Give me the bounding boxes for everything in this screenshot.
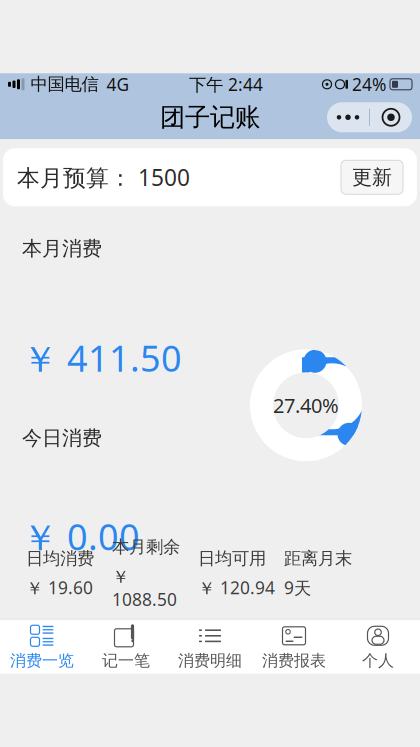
staticText: 下午 2:44 [189, 73, 263, 96]
staticText: 本月预算： 1500 [17, 162, 190, 192]
staticText: ￥ 1088.50 [112, 565, 177, 611]
staticText: 日均可用 [198, 548, 266, 569]
staticText: 27.40% [273, 392, 339, 419]
staticText: 更新 [352, 165, 392, 190]
button[interactable]: More [327, 102, 369, 132]
button[interactable]: 消费报表 [252, 619, 336, 674]
staticText: 团子记账 [160, 102, 260, 133]
button[interactable]: 消费一览 [0, 619, 84, 674]
staticText: ￥ 411.50 [22, 334, 182, 382]
staticText: 24% [352, 73, 386, 96]
staticText: 消费一览 [10, 651, 74, 670]
staticText: 记一笔 [102, 651, 150, 670]
staticText: 9天 [284, 576, 311, 599]
staticText: 本月消费 [22, 236, 102, 261]
staticText: 个人 [362, 651, 394, 670]
staticText: ￥ 120.94 [198, 576, 275, 599]
button[interactable]: 记一笔 [84, 619, 168, 674]
staticText: 中国电信 [30, 74, 98, 95]
staticText: 日均消费 [26, 548, 94, 569]
staticText: 消费明细 [178, 651, 242, 670]
button[interactable]: 消费明细 [168, 619, 252, 674]
staticText: 本月剩余 [112, 536, 180, 558]
staticText: ￥ 0.00 [22, 512, 140, 560]
button[interactable]: 更新 [341, 160, 403, 194]
staticText: 4G [106, 73, 129, 96]
staticText: ￥ 19.60 [26, 576, 93, 599]
staticText: 距离月末 [284, 548, 352, 569]
button[interactable]: Close [370, 102, 412, 132]
button[interactable]: 个人 [336, 619, 420, 674]
staticText: 今日消费 [22, 426, 102, 450]
staticText: 消费报表 [262, 651, 326, 670]
